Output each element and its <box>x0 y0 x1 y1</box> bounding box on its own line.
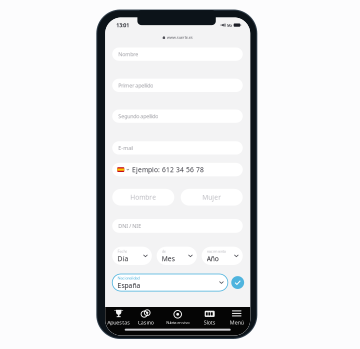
staticText: Fecha <box>117 249 127 254</box>
button[interactable]: Mujer <box>181 189 243 206</box>
button[interactable]: Ejemplo: 612 34 56 78 <box>112 163 243 176</box>
staticText: E-mail <box>118 144 133 151</box>
button[interactable]: Ruleta en vivo <box>159 308 196 327</box>
staticText: Ejemplo: 612 34 56 78 <box>132 165 204 174</box>
staticText: 13:01 <box>116 22 129 29</box>
button[interactable]: de <box>157 247 197 265</box>
button[interactable]: Slots <box>196 308 223 327</box>
button[interactable]: Nacionalidad <box>112 274 228 291</box>
button[interactable]: nacimiento <box>202 247 243 265</box>
staticText: 5G <box>227 22 232 28</box>
staticText: Segundo apellido <box>118 113 158 120</box>
staticText: España <box>117 281 140 290</box>
button[interactable]: E-mail <box>112 141 243 154</box>
staticText: Slots <box>204 319 216 326</box>
staticText: Mujer <box>202 193 221 202</box>
button[interactable]: Primer apellido <box>112 79 243 92</box>
staticText: de <box>162 249 166 254</box>
staticText: Mes <box>162 254 175 263</box>
staticText: Nacionalidad <box>117 275 139 281</box>
staticText: Menú <box>230 319 244 326</box>
button[interactable]: Nombre <box>112 47 243 61</box>
staticText: Año <box>207 254 219 263</box>
button[interactable]: Casino <box>132 308 159 327</box>
staticText: Primer apellido <box>118 82 153 89</box>
button[interactable]: www.suerte.es <box>105 33 250 42</box>
staticText: Casino <box>138 319 154 326</box>
staticText: Apuestas <box>107 319 130 326</box>
staticText: www.suerte.es <box>167 34 193 40</box>
button[interactable]: Apuestas <box>105 308 132 327</box>
button[interactable]: Fecha <box>112 247 152 265</box>
staticText: nacimiento <box>207 249 226 254</box>
button[interactable]: DNI / NIE <box>112 219 243 233</box>
button[interactable]: Nacionalidad confirmada <box>231 276 244 289</box>
staticText: Ruleta en vivo <box>166 320 189 325</box>
staticText: Día <box>117 254 128 263</box>
staticText: Hombre <box>130 193 156 202</box>
button[interactable]: Hombre <box>112 189 174 206</box>
button[interactable]: Menú <box>223 308 250 327</box>
button[interactable]: Segundo apellido <box>112 109 243 123</box>
staticText: Nombre <box>118 51 138 58</box>
staticText: DNI / NIE <box>118 222 141 229</box>
